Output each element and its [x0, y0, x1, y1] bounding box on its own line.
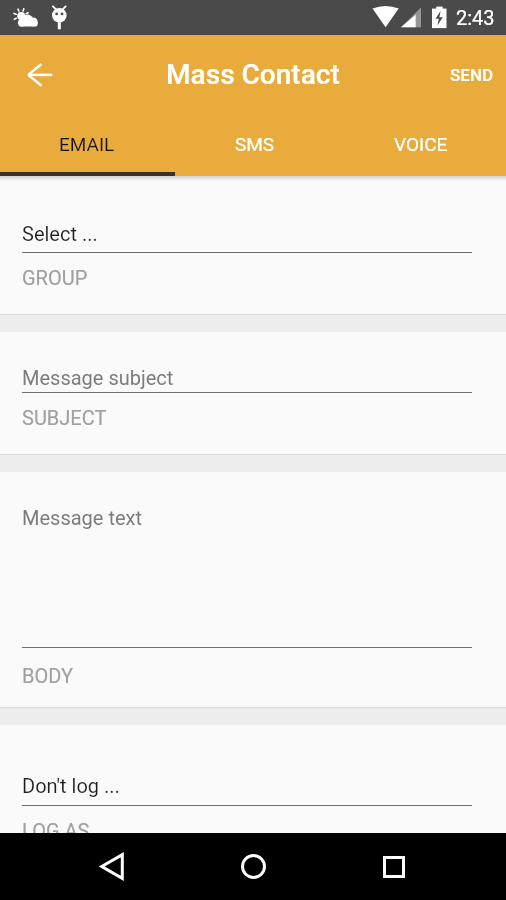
- button[interactable]: VOICE: [337, 111, 506, 176]
- staticText: Don't log ...: [22, 774, 120, 797]
- staticText: SEND: [450, 65, 494, 85]
- button[interactable]: EMAIL: [0, 111, 168, 176]
- staticText: BODY: [22, 664, 73, 687]
- button[interactable]: Message text: [0, 506, 506, 529]
- button[interactable]: Don't log ...: [0, 774, 506, 797]
- button[interactable]: Message subject: [0, 366, 506, 389]
- button[interactable]: SMS: [168, 111, 337, 176]
- staticText: GROUP: [22, 266, 88, 289]
- button[interactable]: Select ...: [0, 222, 506, 245]
- staticText: 2:43: [456, 6, 495, 29]
- staticText: LOG AS: [22, 819, 90, 842]
- staticText: Mass Contact: [166, 58, 340, 91]
- staticText: Message subject: [22, 366, 174, 389]
- staticText: Message text: [22, 506, 142, 529]
- button[interactable]: Navigate up: [14, 49, 64, 99]
- button[interactable]: Home: [219, 833, 287, 900]
- staticText: Select ...: [22, 222, 98, 245]
- button[interactable]: Back: [78, 833, 146, 900]
- staticText: EMAIL: [59, 133, 115, 155]
- staticText: VOICE: [394, 133, 448, 155]
- staticText: SMS: [235, 133, 275, 155]
- staticText: SUBJECT: [22, 406, 107, 429]
- button[interactable]: SEND: [436, 53, 506, 97]
- button[interactable]: Recent apps: [360, 833, 428, 900]
